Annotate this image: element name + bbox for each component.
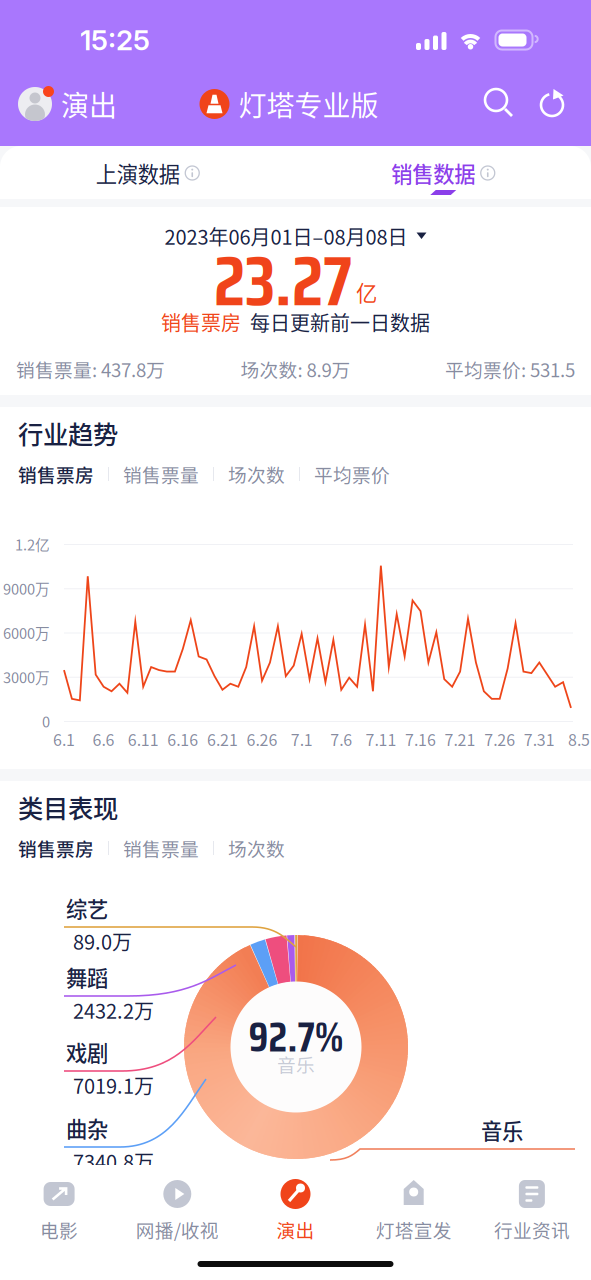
staticText: 7.11 <box>365 727 396 751</box>
staticText: 8.5 <box>568 727 590 751</box>
staticText: 戏剧 <box>66 1037 108 1067</box>
staticText: 7.21 <box>445 727 476 751</box>
staticText: 9000万 <box>3 578 50 599</box>
staticText: 灯塔专业版 <box>238 84 378 124</box>
button[interactable]: 销售票房 <box>18 837 94 859</box>
staticText: 1.2亿 <box>15 533 50 555</box>
staticText: 上演数据 <box>96 158 180 188</box>
staticText: 6.26 <box>246 727 277 751</box>
staticText: 7.26 <box>484 727 515 751</box>
staticText: 类目表现 <box>18 789 118 825</box>
staticText: 7.1 <box>291 727 313 751</box>
staticText: 亿 <box>356 277 377 307</box>
button[interactable]: 场次数 <box>228 837 285 859</box>
button[interactable]: 演出 <box>236 1177 355 1243</box>
staticText: 7.16 <box>405 727 436 751</box>
staticText: 销售票房 <box>18 460 94 487</box>
button[interactable]: 上演数据 <box>0 146 295 199</box>
button[interactable]: 行业资讯 <box>473 1177 591 1243</box>
staticText: 92.7% <box>248 1004 343 1070</box>
staticText: 每日更新前一日数据 <box>250 307 430 336</box>
button[interactable]: 刷新 <box>537 89 567 119</box>
staticText: 6.16 <box>167 727 198 751</box>
staticText: 销售票房 <box>18 834 94 861</box>
staticText: 场次数 <box>228 834 285 861</box>
staticText: 销售票房 <box>161 307 241 336</box>
button[interactable]: 网播/收视 <box>118 1177 236 1243</box>
staticText: 综艺 <box>66 893 108 923</box>
staticText: 演出 <box>61 84 117 124</box>
staticText: 2023年06月01日–08月08日 <box>164 221 407 250</box>
button[interactable]: 搜索 <box>485 89 515 119</box>
staticText: 行业资讯 <box>494 1216 570 1243</box>
staticText: 89.0万 <box>73 926 132 955</box>
button[interactable]: 平均票价 <box>314 463 390 485</box>
staticText: 0 <box>42 710 50 732</box>
button[interactable]: 灯塔宣发 <box>355 1177 473 1243</box>
staticText: 音乐 <box>481 1115 523 1145</box>
staticText: 6.11 <box>128 727 159 751</box>
staticText: 音乐 <box>277 1050 315 1077</box>
staticText: 舞蹈 <box>66 962 108 992</box>
staticText: 7.6 <box>330 727 352 751</box>
staticText: 6.21 <box>207 727 238 751</box>
staticText: 销售票量: 437.8万 <box>16 355 165 382</box>
staticText: 销售数据 <box>391 158 475 188</box>
staticText: 7.31 <box>524 727 555 751</box>
staticText: 15:25 <box>80 23 150 57</box>
staticText: 平均票价 <box>314 460 390 487</box>
button[interactable]: 销售数据 <box>295 146 591 199</box>
staticText: 曲杂 <box>66 1113 108 1143</box>
staticText: 平均票价: 531.5 <box>445 355 575 382</box>
staticText: 7019.1万 <box>73 1070 154 1099</box>
staticText: 演出 <box>276 1216 314 1243</box>
staticText: 网播/收视 <box>136 1216 219 1243</box>
staticText: 23.27 <box>214 226 352 335</box>
staticText: 场次数 <box>228 460 285 487</box>
button[interactable]: 2023年06月01日–08月08日 <box>164 224 426 248</box>
staticText: 6.6 <box>93 727 115 751</box>
staticText: 销售票量 <box>123 460 199 487</box>
button[interactable]: 演出 <box>18 84 117 124</box>
staticText: 销售票量 <box>123 834 199 861</box>
staticText: 7340.8万 <box>73 1146 154 1175</box>
staticText: 6.1 <box>53 727 75 751</box>
staticText: 行业趋势 <box>18 415 118 451</box>
button[interactable]: 销售票量 <box>123 837 199 859</box>
staticText: 场次数: 8.9万 <box>240 355 350 382</box>
button[interactable]: 场次数 <box>228 463 285 485</box>
staticText: 6000万 <box>3 622 50 643</box>
staticText: 3000万 <box>3 666 50 687</box>
staticText: 2432.2万 <box>73 995 154 1024</box>
staticText: 灯塔宣发 <box>376 1216 452 1243</box>
button[interactable]: 销售票量 <box>123 463 199 485</box>
button[interactable]: 电影 <box>0 1177 118 1243</box>
staticText: 电影 <box>40 1216 78 1243</box>
button[interactable]: 销售票房 <box>18 463 94 485</box>
